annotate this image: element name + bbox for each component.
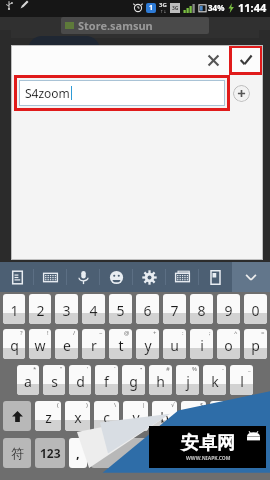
staticText: 1 xyxy=(149,3,154,13)
button[interactable]: √ xyxy=(152,401,177,431)
staticText: + xyxy=(153,329,157,337)
button[interactable]: Space xyxy=(91,438,207,468)
button[interactable]: Hide keyboard xyxy=(232,262,270,292)
button[interactable]: : xyxy=(163,329,186,359)
staticText: Store.samsun xyxy=(78,18,153,33)
staticText: o xyxy=(224,336,233,355)
staticText: w xyxy=(34,336,46,355)
staticText: $ xyxy=(200,401,204,409)
button[interactable]: Layouts xyxy=(166,262,199,292)
staticText: q xyxy=(10,336,19,355)
button[interactable]: • xyxy=(122,365,145,395)
button[interactable]: Shift xyxy=(3,401,31,431)
button[interactable]: ; xyxy=(190,329,213,359)
staticText: ; xyxy=(209,329,211,337)
button[interactable]: 6 xyxy=(136,294,159,324)
button[interactable]: % xyxy=(176,365,199,395)
staticText: p xyxy=(251,336,260,355)
button[interactable]: _ xyxy=(230,365,253,395)
staticText: n xyxy=(189,408,198,427)
button[interactable]: Numbers xyxy=(35,438,65,468)
staticText: c xyxy=(103,408,110,427)
button[interactable]: S4zoom xyxy=(19,80,225,106)
button[interactable]: Add xyxy=(233,85,250,102)
button[interactable]: ~ xyxy=(82,329,105,359)
staticText: 4 xyxy=(89,301,98,320)
button[interactable]: = xyxy=(244,329,267,359)
button[interactable]: 5 xyxy=(109,294,132,324)
staticText: " xyxy=(60,365,63,373)
staticText: ~ xyxy=(99,329,103,337)
button[interactable]: ( xyxy=(35,401,61,431)
button[interactable]: Settings xyxy=(133,262,166,292)
staticText: v xyxy=(132,408,140,427)
staticText: 9 xyxy=(224,301,233,320)
button[interactable]: 7 xyxy=(163,294,186,324)
button[interactable]: w xyxy=(210,401,235,431)
button[interactable]: 2 xyxy=(29,294,51,324)
button[interactable]: 8 xyxy=(190,294,213,324)
staticText: i xyxy=(200,336,204,355)
button[interactable]: | xyxy=(123,401,148,431)
button[interactable]: Voice input xyxy=(67,262,100,292)
button[interactable]: Clipboard xyxy=(0,262,34,292)
staticText: h xyxy=(156,372,165,391)
button[interactable]: Period xyxy=(211,438,229,468)
staticText: 123 xyxy=(40,445,61,461)
button[interactable]: 4 xyxy=(82,294,105,324)
staticText: y xyxy=(144,336,152,355)
staticText: WWW.NIAPK.COM xyxy=(186,455,231,462)
button[interactable]: Confirm xyxy=(229,45,263,75)
staticText: x xyxy=(74,408,82,427)
button[interactable]: Backspace xyxy=(239,401,267,431)
staticText: @ xyxy=(124,329,130,337)
button[interactable]: 1 xyxy=(3,294,25,324)
staticText: 3 xyxy=(62,301,71,320)
staticText: 6 xyxy=(143,301,152,320)
staticText: ) xyxy=(86,401,88,409)
staticText: 安卓网 xyxy=(181,432,235,455)
button[interactable]: 0 xyxy=(244,294,267,324)
button[interactable]: ! xyxy=(29,329,51,359)
button[interactable]: * xyxy=(17,365,39,395)
button[interactable]: 3 xyxy=(55,294,78,324)
staticText: 11:44 xyxy=(238,0,267,15)
staticText: ^ xyxy=(234,329,238,337)
button[interactable]: + xyxy=(136,329,159,359)
button[interactable]: " xyxy=(43,365,65,395)
button[interactable]: @ xyxy=(109,329,132,359)
staticText: b xyxy=(160,408,169,427)
staticText: S4zoom xyxy=(25,85,70,101)
staticText: u xyxy=(170,336,179,355)
button[interactable]: ´ xyxy=(95,365,118,395)
button[interactable]: Enter xyxy=(233,438,267,468)
staticText: j xyxy=(186,372,190,391)
button[interactable]: Symbols xyxy=(3,438,31,468)
button[interactable]: Emoji xyxy=(100,262,133,292)
button[interactable]: Comma xyxy=(69,438,87,468)
button[interactable]: ? xyxy=(3,329,25,359)
staticText: m xyxy=(216,408,230,427)
staticText: √ xyxy=(171,401,175,408)
button[interactable]: ^ xyxy=(217,329,240,359)
staticText: : xyxy=(182,329,184,337)
button[interactable]: ) xyxy=(65,401,90,431)
staticText: 8 xyxy=(197,301,206,320)
button[interactable]: Cancel xyxy=(199,46,227,74)
staticText: ' xyxy=(87,365,89,373)
button[interactable]: \ xyxy=(94,401,119,431)
button[interactable]: - xyxy=(203,365,226,395)
staticText: l xyxy=(240,372,244,391)
staticText: ´ xyxy=(114,365,116,373)
button[interactable]: # xyxy=(149,365,172,395)
button[interactable]: Handwriting xyxy=(199,262,232,292)
button[interactable]: ' xyxy=(69,365,91,395)
button[interactable]: / xyxy=(55,329,78,359)
staticText: ↑↓ xyxy=(160,9,167,14)
button[interactable]: Keyboard xyxy=(34,262,67,292)
staticText: 符 xyxy=(11,445,24,461)
button[interactable]: 9 xyxy=(217,294,240,324)
staticText: t xyxy=(118,336,124,355)
button[interactable]: $ xyxy=(181,401,206,431)
